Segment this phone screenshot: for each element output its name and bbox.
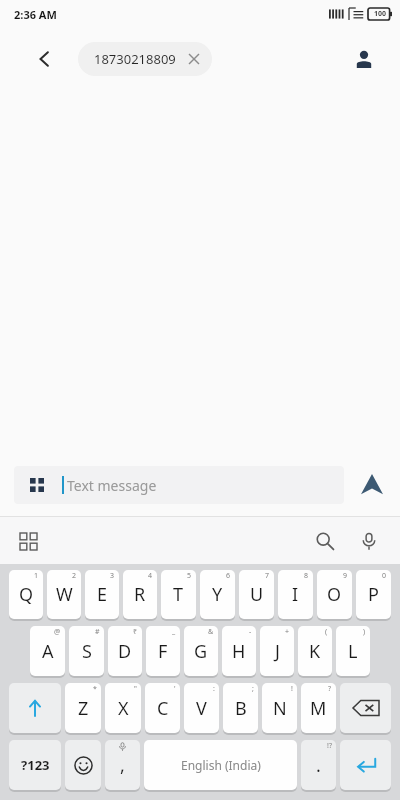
button[interactable]: T: [161, 570, 196, 619]
staticText: ,: [120, 753, 125, 778]
staticText: !?: [327, 741, 332, 751]
button[interactable]: Text message: [14, 466, 344, 504]
button[interactable]: U: [239, 570, 274, 619]
button[interactable]: .: [301, 740, 336, 790]
staticText: ": [134, 684, 137, 694]
button[interactable]: Add contact: [346, 41, 382, 77]
staticText: Z: [78, 696, 89, 721]
button[interactable]: Y: [200, 570, 235, 619]
button[interactable]: D: [108, 626, 142, 676]
button[interactable]: W: [47, 570, 81, 619]
staticText: ): [363, 627, 366, 637]
staticText: _: [172, 627, 176, 637]
staticText: R: [134, 582, 146, 607]
button[interactable]: C: [145, 683, 180, 733]
staticText: 6: [226, 571, 231, 581]
button[interactable]: E: [85, 570, 119, 619]
staticText: B: [235, 696, 247, 721]
staticText: 9: [343, 571, 348, 581]
button[interactable]: P: [356, 570, 391, 619]
button[interactable]: English (India): [144, 740, 297, 790]
button[interactable]: Q: [9, 570, 43, 619]
staticText: 0: [382, 571, 387, 581]
staticText: 100: [374, 9, 387, 19]
button[interactable]: L: [336, 626, 370, 676]
button[interactable]: [65, 740, 101, 790]
button[interactable]: 18730218809: [78, 42, 212, 76]
staticText: ₹: [133, 627, 138, 637]
staticText: 3: [110, 571, 115, 581]
button[interactable]: V: [184, 683, 219, 733]
staticText: N: [273, 696, 287, 721]
button[interactable]: H: [222, 626, 256, 676]
button[interactable]: O: [317, 570, 352, 619]
button[interactable]: G: [184, 626, 218, 676]
button[interactable]: Remove recipient: [186, 51, 202, 67]
staticText: English (India): [181, 757, 261, 773]
button[interactable]: Apps: [10, 523, 46, 559]
staticText: J: [275, 639, 280, 664]
staticText: 1: [34, 571, 39, 581]
button[interactable]: N: [262, 683, 297, 733]
button[interactable]: K: [298, 626, 332, 676]
staticText: (: [325, 627, 328, 637]
staticText: I: [292, 582, 299, 607]
staticText: -: [249, 627, 252, 637]
staticText: X: [118, 696, 129, 721]
button[interactable]: S: [69, 626, 104, 676]
staticText: M: [310, 696, 327, 721]
staticText: .: [316, 753, 321, 778]
staticText: #: [95, 627, 100, 637]
staticText: C: [157, 696, 169, 721]
staticText: H: [232, 639, 246, 664]
staticText: D: [118, 639, 132, 664]
button[interactable]: J: [260, 626, 294, 676]
staticText: Y: [212, 582, 223, 607]
button[interactable]: [9, 683, 61, 733]
button[interactable]: I: [278, 570, 313, 619]
staticText: G: [194, 639, 208, 664]
staticText: P: [368, 582, 379, 607]
button[interactable]: R: [123, 570, 157, 619]
button[interactable]: Voice input: [350, 522, 388, 560]
staticText: 8: [304, 571, 309, 581]
staticText: @: [54, 627, 61, 637]
staticText: &: [208, 627, 214, 637]
button[interactable]: F: [146, 626, 180, 676]
staticText: K: [309, 639, 321, 664]
staticText: ?123: [21, 756, 50, 774]
staticText: 2: [72, 571, 77, 581]
button[interactable]: [340, 683, 391, 733]
staticText: :: [213, 684, 215, 694]
staticText: T: [173, 582, 184, 607]
staticText: ?: [328, 684, 332, 694]
button[interactable]: ?123: [9, 740, 61, 790]
button[interactable]: Z: [65, 683, 101, 733]
staticText: F: [158, 639, 168, 664]
button[interactable]: Send: [344, 454, 400, 516]
staticText: V: [196, 696, 207, 721]
button[interactable]: Search: [306, 522, 344, 560]
staticText: L: [348, 639, 358, 664]
staticText: S: [82, 639, 92, 664]
staticText: O: [327, 582, 342, 607]
staticText: A: [42, 639, 54, 664]
button[interactable]: ,: [105, 740, 140, 790]
button[interactable]: Back: [28, 42, 62, 76]
staticText: 7: [265, 571, 270, 581]
staticText: *: [93, 684, 97, 694]
button[interactable]: M: [301, 683, 336, 733]
staticText: ': [174, 684, 176, 694]
staticText: ;: [252, 684, 254, 694]
staticText: 18730218809: [94, 50, 176, 68]
staticText: Text message: [67, 476, 157, 495]
staticText: Q: [19, 582, 34, 607]
staticText: 4: [148, 571, 153, 581]
button[interactable]: X: [105, 683, 141, 733]
button[interactable]: A: [30, 626, 65, 676]
staticText: W: [56, 582, 73, 607]
staticText: 2:36 AM: [14, 7, 57, 22]
staticText: !: [291, 684, 293, 694]
button[interactable]: [340, 740, 391, 790]
button[interactable]: B: [223, 683, 258, 733]
